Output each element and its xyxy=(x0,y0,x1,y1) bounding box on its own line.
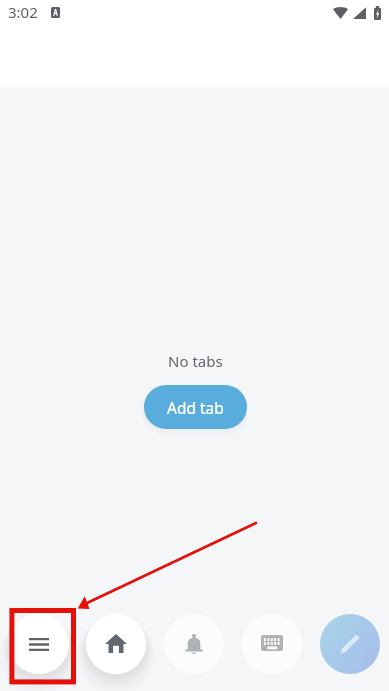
staticText: No tabs xyxy=(168,351,223,371)
staticText: 3:02 xyxy=(8,2,38,22)
button[interactable]: Add tab xyxy=(144,385,247,429)
button[interactable]: Notifications xyxy=(164,614,224,674)
button[interactable]: Home xyxy=(86,614,146,674)
button[interactable]: Keyboard xyxy=(242,614,302,674)
button[interactable]: Compose xyxy=(320,614,380,674)
staticText: Add tab xyxy=(167,397,224,418)
button[interactable]: Menu xyxy=(9,614,69,674)
